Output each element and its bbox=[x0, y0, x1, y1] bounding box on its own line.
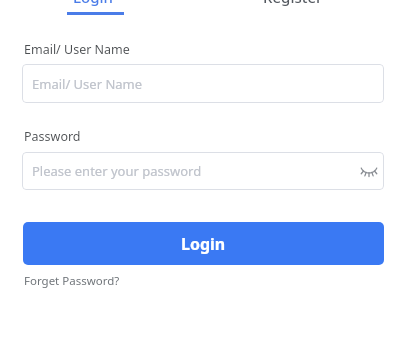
button[interactable]: Login bbox=[23, 222, 384, 265]
staticText: Please enter your password bbox=[32, 162, 202, 180]
button[interactable]: Login bbox=[57, 0, 129, 12]
staticText: Email/ User Name bbox=[32, 75, 143, 93]
button[interactable]: Email/ User Name bbox=[22, 64, 384, 103]
staticText: Forget Password? bbox=[24, 273, 120, 289]
button[interactable]: Register bbox=[255, 0, 331, 12]
button[interactable]: Please enter your password bbox=[22, 152, 384, 190]
staticText: Register bbox=[263, 0, 323, 7]
staticText: Login bbox=[181, 233, 226, 255]
button[interactable]: Forget Password? bbox=[24, 273, 120, 289]
staticText: Password bbox=[24, 128, 81, 145]
staticText: Login bbox=[73, 0, 113, 7]
staticText: Email/ User Name bbox=[24, 41, 130, 58]
